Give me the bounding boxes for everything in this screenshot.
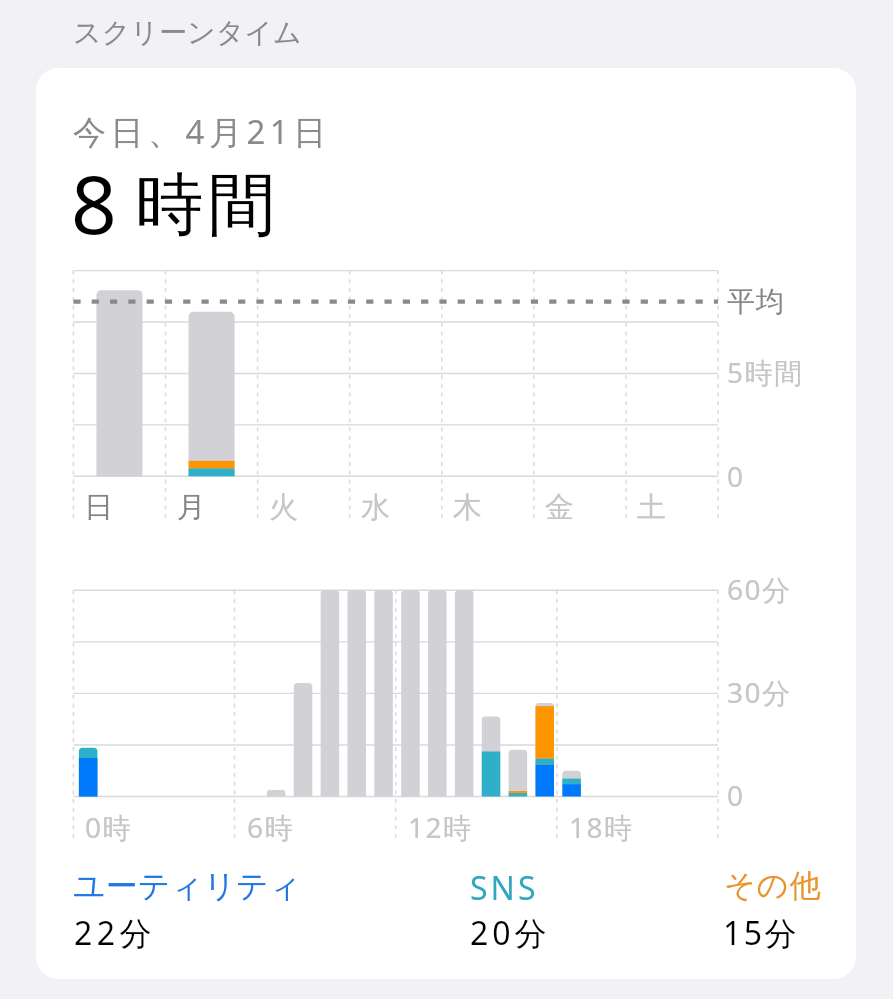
staticText: 火 — [269, 489, 298, 526]
staticText: 20分 — [470, 911, 551, 955]
staticText: 今日、4月21日 — [73, 109, 331, 154]
staticText: 22分 — [74, 911, 157, 955]
button[interactable] — [708, 858, 840, 954]
staticText: ユーティリティ — [73, 866, 302, 906]
staticText: 6時 — [247, 808, 295, 846]
staticText: 12時 — [408, 808, 473, 846]
staticText: 金 — [545, 489, 574, 526]
staticText: 15分 — [723, 911, 800, 955]
staticText: 日 — [84, 489, 113, 526]
staticText: 木 — [453, 489, 482, 526]
staticText: SNS — [470, 866, 539, 910]
button[interactable] — [58, 858, 348, 954]
button[interactable]: スクリーンタイム 今日、4月21日 8時間 — [36, 68, 856, 979]
button[interactable] — [455, 858, 705, 954]
staticText: スクリーンタイム — [73, 15, 302, 50]
staticText: 水 — [361, 489, 390, 526]
staticText: 0時 — [85, 808, 133, 846]
staticText: 18時 — [569, 808, 634, 846]
staticText: 0 — [727, 776, 744, 814]
staticText: 土 — [637, 489, 666, 526]
staticText: 30分 — [727, 673, 792, 711]
staticText: 8 — [71, 148, 117, 257]
staticText: 月 — [177, 489, 206, 526]
staticText: 5時間 — [727, 353, 804, 391]
staticText: 0 — [727, 457, 744, 495]
staticText: 60分 — [727, 570, 792, 608]
staticText: その他 — [724, 866, 822, 905]
staticText: 時間 — [133, 163, 278, 249]
staticText: 平均 — [727, 284, 784, 319]
